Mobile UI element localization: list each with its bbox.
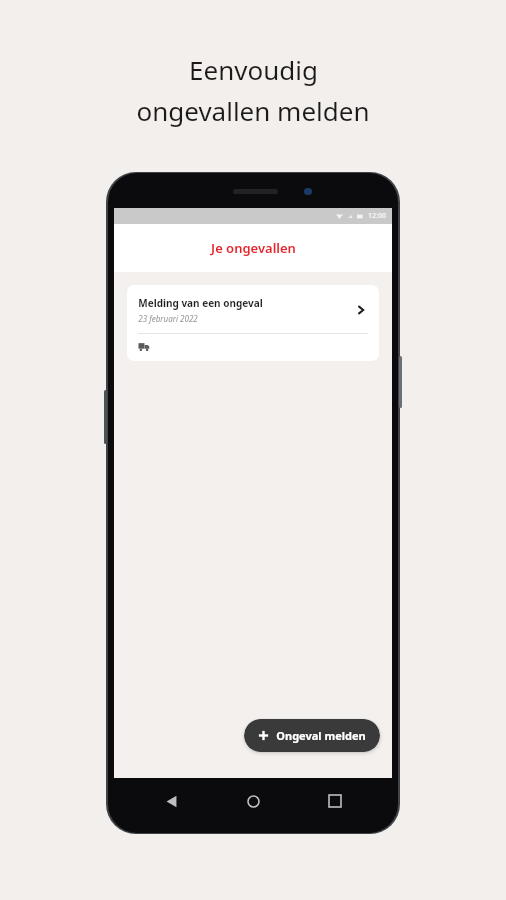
- staticText: 12:00: [368, 211, 386, 221]
- button[interactable]: Ongeval melden: [244, 719, 380, 752]
- button[interactable]: Recent apps: [318, 784, 352, 818]
- staticText: Melding van een ongeval: [138, 296, 263, 310]
- button[interactable]: Home: [236, 784, 270, 818]
- button[interactable]: Back: [154, 784, 188, 818]
- staticText: ongevallen melden: [136, 93, 370, 128]
- staticText: Ongeval melden: [276, 728, 366, 743]
- button[interactable]: Melding van een ongeval: [127, 285, 379, 361]
- staticText: Eenvoudig: [189, 52, 318, 87]
- staticText: Je ongevallen: [211, 239, 296, 257]
- staticText: 23 februari 2022: [138, 313, 198, 324]
